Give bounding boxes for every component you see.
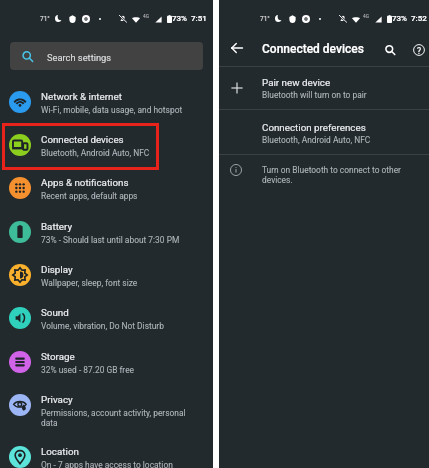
staticText: Pair new device [262, 77, 331, 88]
staticText: devices. [262, 175, 293, 185]
button[interactable]: Privacy [0, 389, 213, 441]
staticText: Bluetooth will turn on to pair [262, 90, 367, 100]
button[interactable]: Display [0, 259, 213, 302]
button[interactable]: Pair new device [219, 67, 429, 109]
staticText: On - 7 apps have access to location [41, 460, 173, 468]
staticText: Connected devices [262, 42, 364, 56]
button[interactable]: Connected devices [0, 129, 213, 172]
staticText: Recent apps, default apps [41, 191, 138, 201]
staticText: Connected devices [41, 134, 124, 145]
button[interactable]: Network & internet [0, 86, 213, 129]
staticText: Bluetooth, Android Auto, NFC [41, 148, 150, 158]
staticText: 32% used - 87.20 GB free [41, 365, 135, 375]
staticText: 73% [172, 14, 187, 23]
staticText: 7:52 [411, 14, 427, 23]
staticText: Wallpaper, sleep, font size [41, 278, 138, 288]
button[interactable]: Help [409, 40, 429, 60]
button[interactable]: Location [0, 441, 213, 468]
staticText: Bluetooth, Android Auto, NFC [262, 135, 371, 145]
staticText: Wi-Fi, mobile, data usage, and hotspot [41, 105, 183, 115]
button[interactable]: Back [226, 37, 248, 59]
staticText: Privacy [41, 394, 73, 405]
staticText: 73% - Should last until about 7:30 PM [41, 235, 180, 245]
staticText: 4G [143, 14, 149, 20]
staticText: Location [41, 446, 79, 457]
staticText: Connection preferences [262, 122, 366, 133]
button[interactable]: Search settings [10, 42, 203, 70]
staticText: 71° [40, 15, 50, 23]
staticText: Volume, vibration, Do Not Disturb [41, 321, 164, 331]
staticText: 4G [363, 14, 369, 20]
button[interactable]: Storage [0, 346, 213, 389]
staticText: Permissions, account activity, personal [41, 408, 186, 418]
staticText: 73% [392, 14, 407, 23]
button[interactable]: Sound [0, 302, 213, 345]
staticText: Sound [41, 307, 69, 318]
staticText: Network & internet [41, 91, 122, 102]
staticText: ? [417, 46, 422, 56]
staticText: Apps & notifications [41, 177, 129, 188]
button[interactable]: Search [379, 40, 399, 60]
button[interactable]: Battery [0, 216, 213, 259]
staticText: 7:51 [191, 14, 207, 23]
staticText: Storage [41, 351, 75, 362]
button[interactable]: Apps & notifications [0, 172, 213, 215]
staticText: Search settings [47, 52, 112, 63]
staticText: 71° [260, 15, 270, 23]
button[interactable]: Connection preferences [219, 110, 429, 154]
staticText: Display [41, 264, 73, 275]
staticText: Turn on Bluetooth to connect to other [262, 165, 401, 175]
staticText: Battery [41, 221, 73, 232]
staticText: data [41, 418, 58, 428]
